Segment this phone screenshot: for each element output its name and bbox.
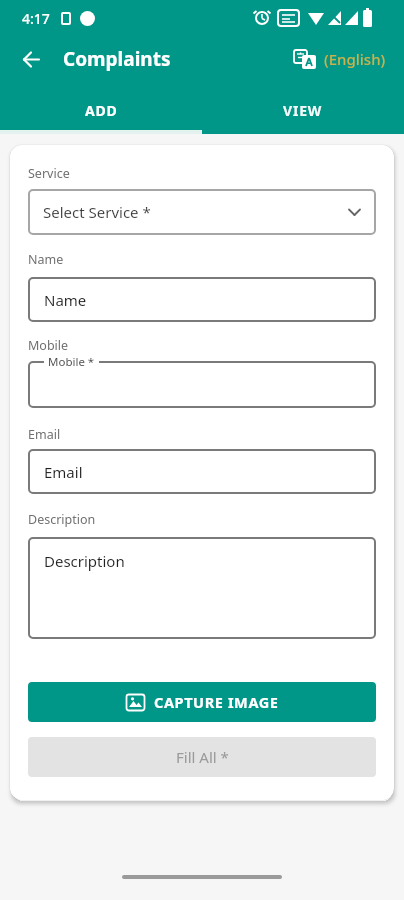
staticText: (English): [324, 49, 386, 69]
button[interactable]: (English): [293, 47, 386, 71]
button[interactable]: [28, 361, 376, 408]
staticText: Name: [28, 251, 64, 268]
button[interactable]: Fill All *: [28, 737, 376, 777]
button[interactable]: Description: [28, 537, 376, 639]
staticText: Description: [44, 551, 125, 571]
button[interactable]: [14, 42, 48, 76]
button[interactable]: CAPTURE IMAGE: [28, 682, 376, 722]
staticText: Email: [28, 426, 61, 443]
button[interactable]: VIEW: [202, 90, 404, 130]
staticText: Select Service *: [43, 202, 151, 222]
staticText: CAPTURE IMAGE: [154, 692, 279, 712]
staticText: 4:17: [22, 9, 50, 28]
staticText: Description: [28, 511, 96, 528]
staticText: Complaints: [63, 46, 171, 72]
button[interactable]: Name: [28, 277, 376, 322]
staticText: Fill All *: [176, 747, 229, 767]
button[interactable]: Select Service *: [28, 189, 376, 235]
staticText: Service: [28, 165, 70, 182]
button[interactable]: ADD: [0, 90, 202, 130]
staticText: Mobile: [28, 337, 69, 354]
staticText: ADD: [85, 101, 118, 120]
staticText: Name: [44, 290, 87, 310]
staticText: Mobile *: [48, 354, 95, 370]
staticText: VIEW: [283, 101, 323, 120]
button[interactable]: Email: [28, 449, 376, 494]
staticText: Email: [44, 462, 83, 482]
